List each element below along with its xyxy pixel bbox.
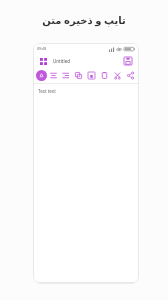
button[interactable]: Test text <box>33 84 139 283</box>
button[interactable]: Cut <box>112 70 123 81</box>
button[interactable]: Share <box>125 70 136 81</box>
button[interactable]: Align center <box>48 70 59 81</box>
staticText: Test text <box>38 88 56 94</box>
button[interactable]: Save file <box>86 70 97 81</box>
button[interactable]: Menu <box>38 56 49 67</box>
staticText: Untitled <box>53 58 70 64</box>
button[interactable]: Copy <box>73 70 84 81</box>
button[interactable]: Text color <box>36 70 47 81</box>
button[interactable]: Align right <box>60 70 71 81</box>
button[interactable]: Paste <box>99 70 110 81</box>
staticText: 09:48 <box>37 46 47 51</box>
button[interactable]: Save <box>122 55 134 67</box>
staticText: تایپ و ذخیره متن <box>0 13 168 27</box>
